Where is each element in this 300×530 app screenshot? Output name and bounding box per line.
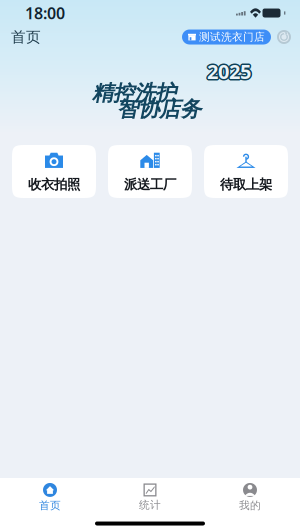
staticText: 2025: [205, 58, 249, 85]
staticText: 2025: [206, 59, 250, 86]
staticText: 2025: [208, 59, 252, 86]
staticText: 智协店务: [117, 96, 201, 122]
button[interactable]: Refresh: [271, 30, 300, 44]
staticText: 首页: [39, 499, 61, 512]
staticText: 18:00: [25, 2, 65, 24]
staticText: 待取上架: [220, 176, 272, 193]
staticText: 2025: [208, 58, 252, 85]
staticText: 精控洗护: [92, 80, 176, 106]
staticText: 2025: [207, 58, 251, 85]
staticText: 统计: [139, 498, 161, 511]
staticText: 2025: [208, 57, 252, 83]
staticText: 首页: [11, 28, 41, 46]
staticText: 2025: [207, 59, 251, 86]
button[interactable]: 首页: [0, 481, 100, 513]
button[interactable]: 收衣拍照: [12, 145, 96, 198]
button[interactable]: 派送工厂: [108, 145, 192, 198]
staticText: 我的: [239, 499, 261, 512]
staticText: 收衣拍照: [28, 176, 80, 193]
button[interactable]: 待取上架: [204, 145, 288, 198]
staticText: 2025: [207, 56, 251, 83]
staticText: 2025: [206, 57, 250, 83]
button[interactable]: 我的: [200, 481, 300, 513]
button[interactable]: 测试洗衣门店: [182, 29, 271, 44]
button[interactable]: 统计: [100, 481, 200, 513]
staticText: 测试洗衣门店: [199, 30, 265, 43]
button[interactable]: 首页: [0, 24, 41, 50]
staticText: 派送工厂: [124, 176, 176, 193]
